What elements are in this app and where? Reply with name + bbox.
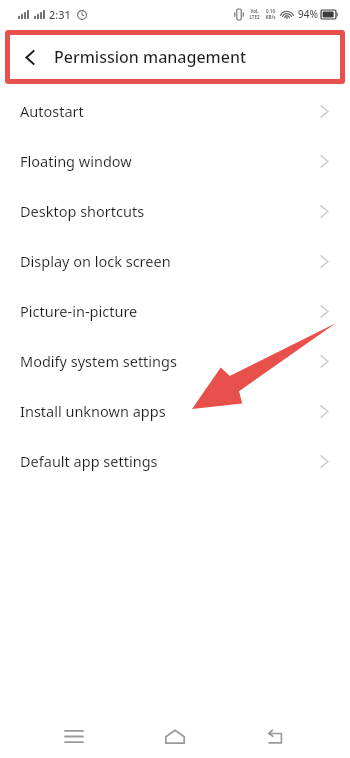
button[interactable]: Modify system settings: [0, 336, 350, 386]
button[interactable]: Default app settings: [0, 436, 350, 486]
button[interactable]: Floating window: [0, 136, 350, 186]
staticText: Desktop shortcuts: [20, 201, 145, 221]
staticText: Floating window: [20, 151, 132, 171]
button[interactable]: Home: [148, 716, 202, 756]
staticText: LTE2: [249, 14, 260, 20]
button[interactable]: Back: [0, 30, 350, 84]
staticText: Install unknown apps: [20, 401, 166, 421]
button[interactable]: Back: [17, 44, 43, 70]
staticText: 94%: [298, 7, 318, 21]
staticText: Default app settings: [20, 451, 158, 471]
button[interactable]: Install unknown apps: [0, 386, 350, 436]
staticText: 0.10: [266, 8, 275, 14]
button[interactable]: Picture-in-picture: [0, 286, 350, 336]
button[interactable]: Back: [249, 716, 303, 756]
staticText: Picture-in-picture: [20, 301, 138, 321]
staticText: KB/s: [265, 14, 276, 20]
staticText: VoL: [250, 8, 259, 14]
button[interactable]: Recent apps: [47, 716, 101, 756]
staticText: Permission management: [54, 46, 247, 68]
button[interactable]: Display on lock screen: [0, 236, 350, 286]
staticText: 2:31: [49, 7, 71, 22]
button[interactable]: Desktop shortcuts: [0, 186, 350, 236]
button[interactable]: Autostart: [0, 86, 350, 136]
staticText: Display on lock screen: [20, 251, 171, 271]
staticText: Modify system settings: [20, 351, 177, 371]
staticText: Autostart: [20, 101, 84, 121]
